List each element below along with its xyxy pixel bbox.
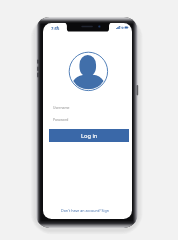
staticText: Username [53,105,70,110]
staticText: Password [53,117,69,122]
button[interactable]: Don't have an account? Sign up. [61,207,114,214]
staticText: Don't have an account? Sign up. [61,208,114,213]
staticText: 7:55 [51,26,60,32]
button[interactable]: Log in [49,129,129,142]
staticText: Log in [81,132,98,140]
